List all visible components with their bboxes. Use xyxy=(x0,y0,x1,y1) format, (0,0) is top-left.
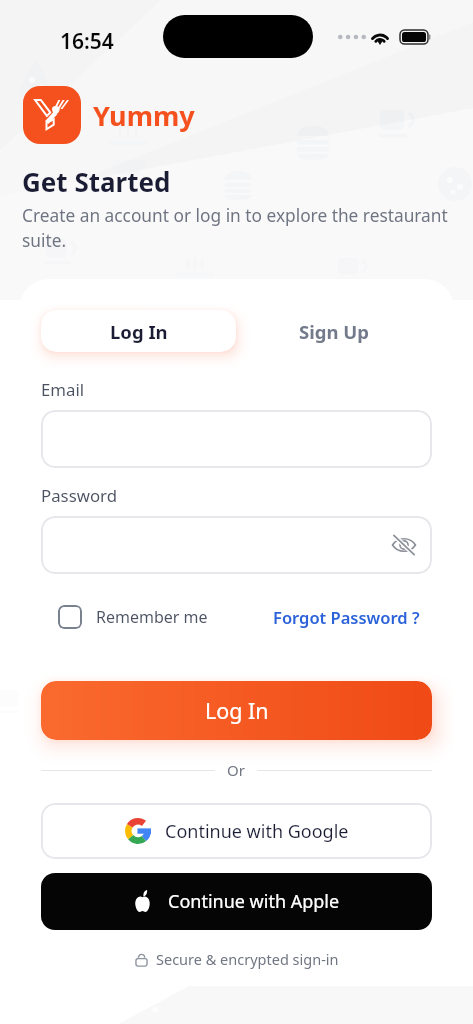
staticText: Continue with Apple xyxy=(168,889,340,914)
staticText: Continue with Google xyxy=(165,819,349,844)
button[interactable]: Show password xyxy=(41,516,432,574)
staticText: Log In xyxy=(205,696,269,725)
staticText: Forgot Password ? xyxy=(273,606,420,628)
button[interactable]: Forgot Password ? xyxy=(273,606,420,628)
staticText: Email xyxy=(41,378,85,401)
button[interactable]: Show password xyxy=(389,530,419,560)
staticText: Sign Up xyxy=(299,319,369,344)
staticText: Or xyxy=(227,760,245,780)
staticText: 16:54 xyxy=(60,27,114,56)
button[interactable]: Remember me xyxy=(58,605,208,629)
staticText: Remember me xyxy=(96,606,208,628)
button[interactable]: Continue with Google xyxy=(41,803,432,859)
button[interactable]: Continue with Apple xyxy=(41,873,432,930)
button[interactable]: Sign Up xyxy=(236,310,432,352)
staticText: Password xyxy=(41,484,117,507)
staticText: Create an account or log in to explore t… xyxy=(22,204,456,252)
button[interactable]: Log In xyxy=(41,310,236,352)
button[interactable]: Log In xyxy=(41,681,432,740)
staticText: Secure & encrypted sign-in xyxy=(156,949,339,969)
staticText: Yummy xyxy=(93,97,195,134)
staticText: Get Started xyxy=(22,164,171,199)
button[interactable] xyxy=(41,410,432,468)
staticText: Log In xyxy=(110,319,168,344)
